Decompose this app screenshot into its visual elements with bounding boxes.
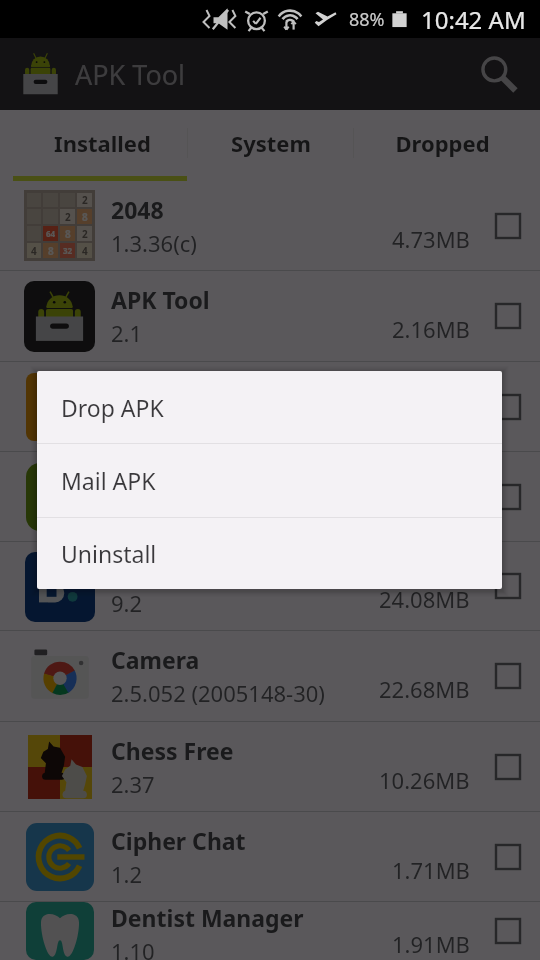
staticText: 2 [82,193,88,207]
button[interactable]: Search [470,47,524,101]
button[interactable]: Select Avira [496,485,520,509]
staticText: 1.91MB [392,929,470,959]
button[interactable]: Select 2048 [496,214,520,238]
staticText: APK Tool [75,56,186,93]
button[interactable]: System [188,110,353,176]
staticText: APK Tool [111,284,210,315]
button[interactable]: Aptoide [0,362,540,451]
staticText: Dropped [395,128,490,158]
staticText: System [231,128,311,158]
staticText: 2 [82,227,88,241]
staticText: Dentist Manager [111,902,304,933]
staticText: 1.10 [111,936,155,960]
button[interactable]: Select Aptoide [496,395,520,419]
button[interactable]: Mail APK [37,444,502,517]
staticText: Installed [54,128,151,158]
staticText: 2 [65,210,71,224]
button[interactable]: Select Dentist Manager [496,919,520,943]
staticText: Aptoide [111,375,201,406]
staticText: 4.73MB [392,224,470,254]
staticText: 5.4.1 [111,499,161,529]
staticText: 2.37 [111,769,155,799]
staticText: 10:42 AM [421,3,526,36]
staticText: 32 [63,245,73,256]
staticText: 4 [82,244,88,258]
button[interactable]: Select Camera [496,664,520,688]
button[interactable]: Select Chess Free [496,755,520,779]
staticText: 28.8MB [392,495,470,525]
button[interactable]: Installed [0,110,187,176]
staticText: Booking.com [111,554,261,585]
staticText: 9.2 [111,588,143,618]
button[interactable]: Dentist Manager [0,902,540,960]
staticText: 2048 [111,194,164,225]
staticText: 1.2 [111,859,143,889]
staticText: Mail APK [61,465,156,496]
staticText: 8 [48,244,54,258]
staticText: 2.5.052 (2005148-30) [111,678,325,708]
button[interactable]: Dropped [354,110,540,176]
staticText: 2.16MB [392,314,470,344]
staticText: Camera [111,644,200,675]
staticText: Drop APK [61,392,164,423]
button[interactable]: Avira [0,452,540,541]
staticText: 4 [31,244,37,258]
staticText: 64 [46,228,56,239]
button[interactable]: Chess Free [0,722,540,811]
staticText: 88% [349,7,385,32]
staticText: Cipher Chat [111,825,246,856]
staticText: 24.08MB [379,584,470,614]
button[interactable]: APK Tool [0,271,540,361]
button[interactable]: Cipher Chat [0,812,540,901]
button[interactable]: Booking.com [0,542,540,630]
staticText: 22.68MB [379,674,470,704]
staticText: Chess Free [111,735,234,766]
button[interactable]: Camera [0,631,540,721]
staticText: 9.9.1 [111,409,161,439]
button[interactable]: Select Cipher Chat [496,845,520,869]
button[interactable]: Select Booking.com [496,574,520,598]
button[interactable]: 2 [0,181,540,270]
staticText: 8 [65,227,71,241]
button[interactable]: Select APK Tool [496,304,520,328]
staticText: 10.26MB [379,765,470,795]
staticText: 2.1 [111,318,143,348]
staticText: Uninstall [61,538,157,569]
staticText: 8 [82,210,88,224]
staticText: 1.3.36(c) [111,228,197,258]
staticText: 1.71MB [392,855,470,885]
staticText: Avira [111,465,171,496]
button[interactable]: Drop APK [37,371,502,443]
button[interactable]: Uninstall [37,518,502,589]
